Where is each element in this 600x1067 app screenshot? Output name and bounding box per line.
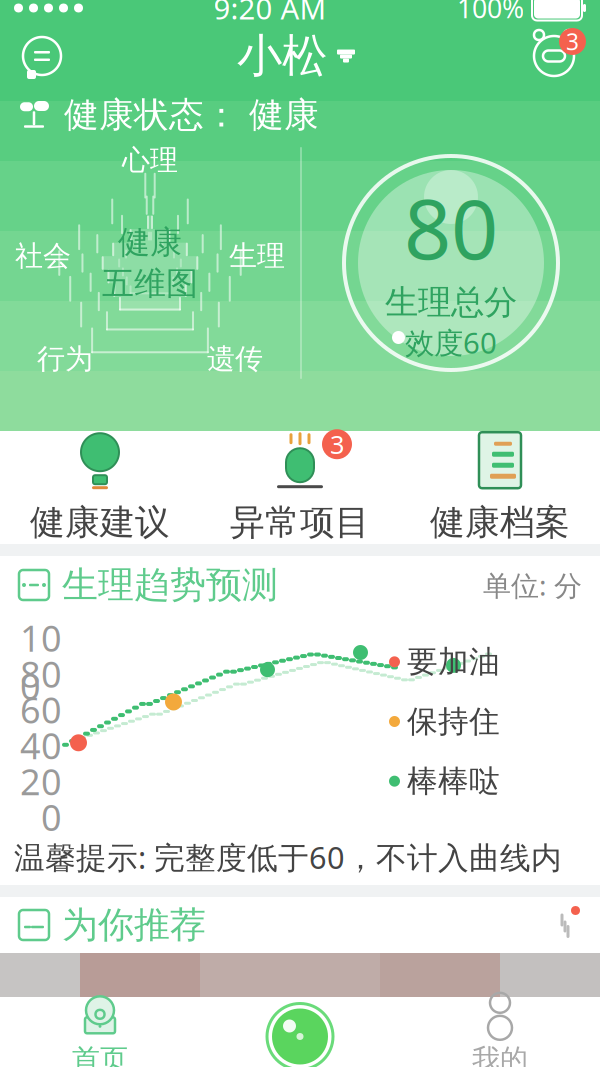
staticText: 心理 xyxy=(122,143,178,177)
staticText: 温馨提示: 完整度低于60，不计入曲线内 xyxy=(14,837,562,877)
staticText: 健康档案 xyxy=(430,501,570,544)
staticText: 健康建议 xyxy=(30,501,170,544)
button[interactable]: Reminders xyxy=(518,26,590,86)
button[interactable]: 我的 xyxy=(400,988,600,1067)
staticText: 社会 xyxy=(15,239,71,273)
staticText: 小松 xyxy=(237,28,327,84)
staticText: 健康 xyxy=(118,223,182,262)
staticText: 首页 xyxy=(72,1042,128,1067)
button[interactable]: 为你推荐 xyxy=(0,897,600,953)
button[interactable]: Messages xyxy=(10,26,74,86)
staticText: 100% xyxy=(457,0,524,26)
staticText: 3 xyxy=(330,427,344,461)
button[interactable]: Assistant xyxy=(200,1001,400,1067)
staticText: 为你推荐 xyxy=(62,903,206,947)
staticText: 80 xyxy=(20,650,62,698)
button[interactable]: 健康档案 xyxy=(400,415,600,560)
staticText: 行为 xyxy=(37,342,93,376)
staticText: 五维图 xyxy=(102,264,198,303)
button[interactable]: 3 xyxy=(200,415,400,560)
staticText: 40 xyxy=(20,721,62,769)
staticText: 9:20 AM xyxy=(213,0,326,27)
staticText: 60 xyxy=(20,686,62,733)
staticText: 0 xyxy=(41,793,62,841)
staticText: 3 xyxy=(566,26,579,56)
button[interactable]: 健康建议 xyxy=(0,415,200,560)
staticText: 100 xyxy=(20,614,62,710)
staticText: 遗传 xyxy=(207,342,263,376)
staticText: 要加油 xyxy=(407,643,500,681)
staticText: 20 xyxy=(20,757,62,805)
staticText: 棒棒哒 xyxy=(407,762,500,800)
button[interactable]: 首页 xyxy=(0,988,200,1067)
button[interactable]: 小松 xyxy=(227,26,365,86)
staticText: 效度60 xyxy=(405,323,497,362)
staticText: 保持住 xyxy=(407,703,500,740)
staticText: 生理 xyxy=(229,239,285,273)
staticText: 生理总分 xyxy=(385,282,517,323)
staticText: 生理趋势预测 xyxy=(62,563,278,607)
staticText: 我的 xyxy=(472,1042,528,1067)
staticText: 异常项目 xyxy=(230,501,370,544)
staticText: 80 xyxy=(404,172,498,282)
staticText: 健康状态： 健康 xyxy=(64,94,319,136)
staticText: 单位: 分 xyxy=(483,566,582,604)
